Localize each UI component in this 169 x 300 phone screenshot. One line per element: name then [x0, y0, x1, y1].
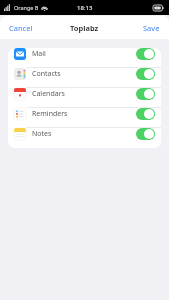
- staticText: Calendars: [32, 89, 65, 99]
- button[interactable]: Reminders: [8, 108, 161, 128]
- button[interactable]: Mail: [8, 48, 161, 68]
- button[interactable]: Toggle: [136, 48, 155, 60]
- button[interactable]: Contacts: [8, 68, 161, 88]
- staticText: Contacts: [32, 69, 61, 79]
- button[interactable]: Toggle: [136, 68, 155, 80]
- button[interactable]: Toggle: [136, 88, 155, 100]
- staticText: Toplabz: [70, 23, 99, 33]
- button[interactable]: Calendars: [8, 88, 161, 108]
- staticText: Save: [143, 23, 160, 33]
- staticText: Orange B: [14, 4, 39, 11]
- button[interactable]: Save: [134, 18, 169, 38]
- button[interactable]: Toggle: [136, 128, 155, 140]
- staticText: 18:13: [77, 4, 93, 12]
- staticText: Notes: [32, 129, 52, 139]
- button[interactable]: Notes: [8, 128, 161, 148]
- button[interactable]: Toggle: [136, 108, 155, 120]
- staticText: Reminders: [32, 109, 68, 119]
- button[interactable]: Cancel: [0, 18, 42, 38]
- staticText: Cancel: [9, 23, 33, 33]
- staticText: Mail: [32, 49, 46, 59]
